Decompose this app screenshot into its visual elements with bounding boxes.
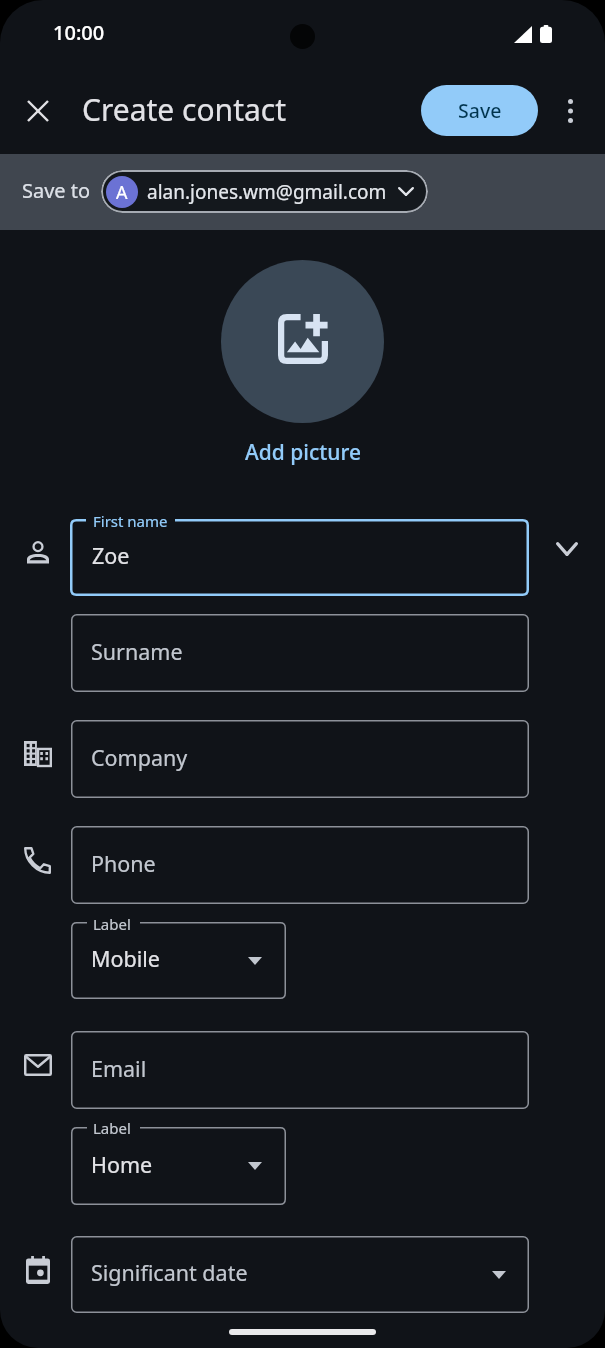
button[interactable]: Close [14,87,62,135]
button[interactable]: Email [71,1031,529,1109]
staticText: Phone [91,849,156,878]
button[interactable]: Add picture [245,438,361,467]
staticText: First name [93,511,168,531]
button[interactable]: A [101,170,428,213]
button[interactable]: More options [546,87,594,135]
staticText: A [116,180,128,205]
staticText: Email [91,1054,147,1083]
button[interactable]: Mobile [71,922,286,999]
staticText: Save to [22,177,91,204]
staticText: Significant date [91,1258,248,1287]
staticText: alan.jones.wm@gmail.com [147,179,387,205]
staticText: Label [93,1118,131,1138]
button[interactable]: Home [71,1127,286,1205]
button[interactable]: Phone [71,826,529,904]
button[interactable]: Company [71,720,529,798]
button[interactable]: Expand name fields [547,529,587,569]
button[interactable]: Significant date [71,1236,529,1313]
staticText: Save [458,97,502,124]
staticText: Zoe [92,541,130,570]
staticText: Surname [91,637,183,666]
staticText: Home [91,1150,153,1179]
staticText: 10:00 [53,19,105,46]
button[interactable]: Surname [71,614,529,692]
button[interactable]: Zoe [70,519,529,596]
staticText: Company [91,743,188,772]
staticText: Create contact [82,89,287,130]
button[interactable]: Save [421,85,538,136]
staticText: Mobile [91,944,160,973]
button[interactable]: Add picture [221,260,384,423]
staticText: Label [93,914,131,934]
